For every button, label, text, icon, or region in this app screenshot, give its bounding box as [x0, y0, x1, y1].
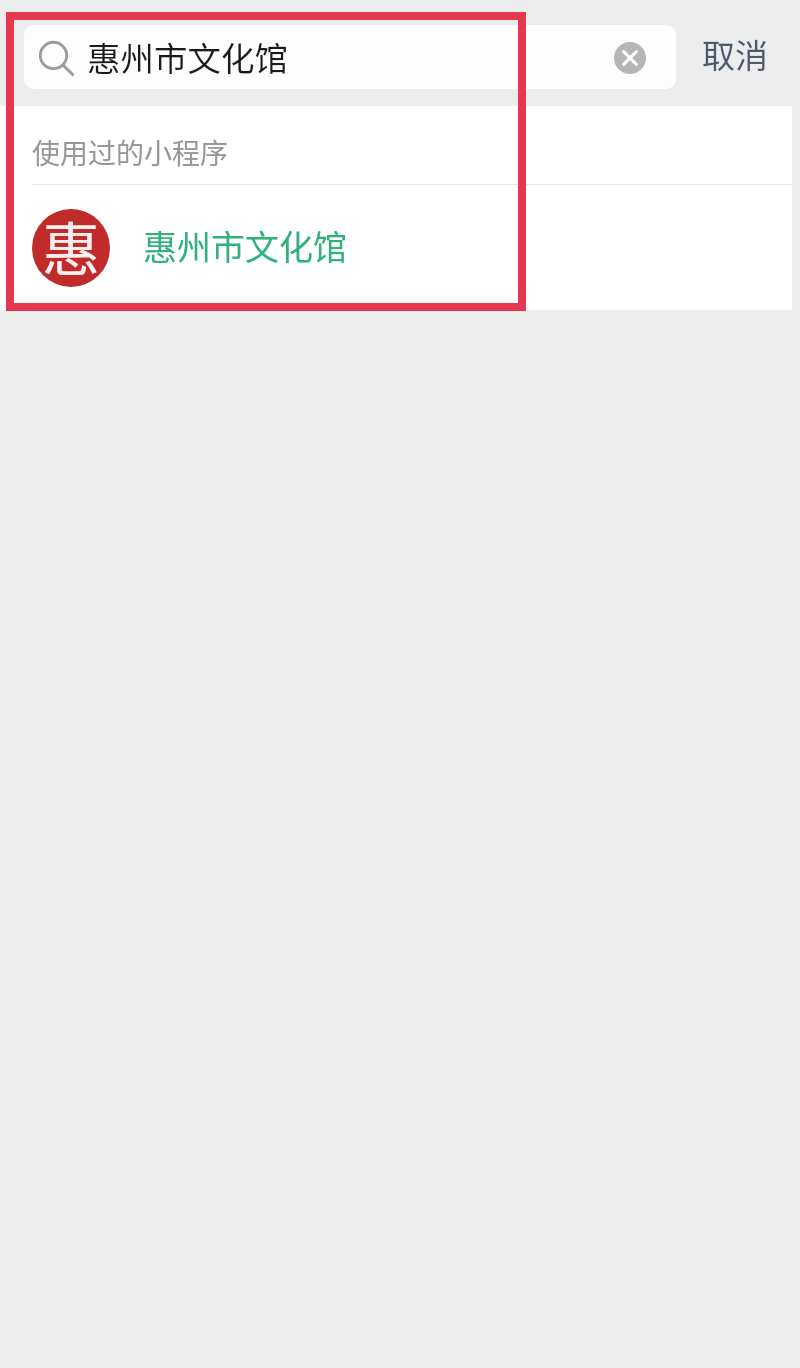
staticText: 取消 [702, 30, 768, 78]
button[interactable]: 惠 [0, 185, 792, 310]
staticText: 惠州市文化馆 [143, 221, 347, 270]
button[interactable]: Clear search text [611, 39, 649, 77]
staticText: 使用过的小程序 [32, 132, 229, 173]
staticText: 惠州市文化馆 [87, 32, 288, 81]
button[interactable]: 取消 [690, 22, 780, 86]
button[interactable]: 惠州市文化馆 [24, 25, 676, 89]
staticText: 惠 [42, 209, 101, 282]
